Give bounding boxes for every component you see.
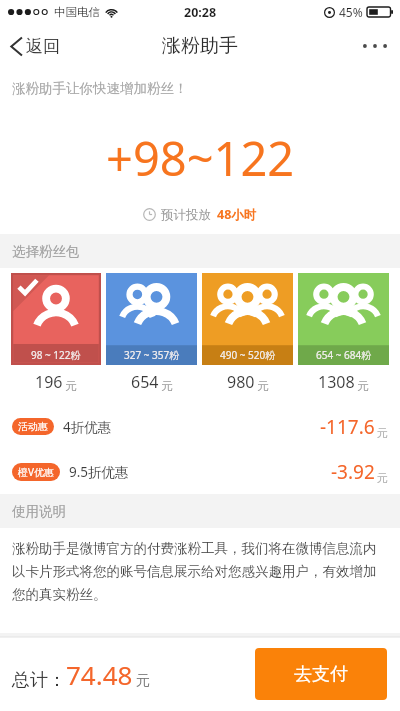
staticText: 490 ~ 520粉 bbox=[220, 348, 276, 362]
staticText: 涨粉助手是微博官方的付费涨粉工具，我们将在微博信息流内以卡片形式将您的账号信息展… bbox=[12, 540, 388, 603]
staticText: 元 bbox=[161, 379, 173, 393]
button[interactable]: More options bbox=[350, 24, 400, 68]
staticText: 654 ~ 684粉 bbox=[316, 348, 372, 362]
staticText: 1308 bbox=[318, 371, 355, 393]
staticText: 元 bbox=[377, 426, 388, 440]
staticText: 元 bbox=[257, 379, 269, 393]
staticText: 9.5折优惠 bbox=[69, 463, 129, 481]
staticText: 预计投放 bbox=[161, 207, 211, 223]
staticText: 元 bbox=[357, 379, 369, 393]
staticText: +98~122 bbox=[106, 126, 295, 190]
staticText: 中国电信 bbox=[54, 5, 100, 19]
staticText: 元 bbox=[65, 379, 77, 393]
staticText: 总计： bbox=[12, 669, 66, 692]
staticText: 涨粉助手 bbox=[162, 34, 238, 58]
staticText: 去支付 bbox=[294, 663, 348, 686]
staticText: 活动惠 bbox=[18, 420, 48, 433]
button[interactable]: 490 ~ 520粉 bbox=[202, 273, 293, 393]
button[interactable]: 返回 bbox=[0, 24, 72, 68]
staticText: 橙V优惠 bbox=[18, 465, 54, 479]
staticText: 654 bbox=[131, 371, 159, 393]
staticText: 45% bbox=[339, 4, 363, 20]
staticText: -117.6 bbox=[320, 414, 375, 440]
staticText: 使用说明 bbox=[12, 503, 66, 520]
staticText: 48小时 bbox=[217, 206, 257, 223]
button[interactable]: 活动惠 bbox=[0, 404, 400, 449]
staticText: 20:28 bbox=[184, 4, 217, 21]
staticText: 980 bbox=[227, 371, 255, 393]
staticText: 98 ~ 122粉 bbox=[31, 348, 81, 362]
button[interactable]: 橙V优惠 bbox=[0, 449, 400, 494]
staticText: 元 bbox=[136, 672, 150, 690]
staticText: 4折优惠 bbox=[63, 418, 112, 436]
staticText: 元 bbox=[377, 471, 388, 485]
button[interactable]: 去支付 bbox=[255, 648, 387, 700]
staticText: 涨粉助手让你快速增加粉丝！ bbox=[12, 80, 188, 97]
button[interactable]: 98 ~ 122粉 bbox=[11, 273, 101, 393]
staticText: 选择粉丝包 bbox=[12, 243, 80, 260]
staticText: 返回 bbox=[26, 36, 60, 57]
staticText: 327 ~ 357粉 bbox=[124, 348, 180, 362]
staticText: 74.48 bbox=[66, 657, 133, 692]
button[interactable]: 654 ~ 684粉 bbox=[298, 273, 389, 393]
staticText: -3.92 bbox=[331, 459, 375, 485]
button[interactable]: 327 ~ 357粉 bbox=[106, 273, 197, 393]
staticText: 196 bbox=[35, 371, 63, 393]
